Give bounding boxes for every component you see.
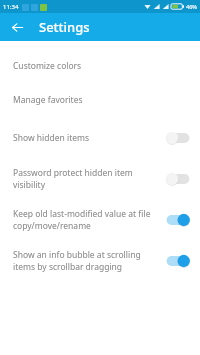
staticText: Customize colors	[13, 60, 82, 72]
button[interactable]: Keep old last-modified value at file cop…	[0, 199, 200, 240]
staticText: Keep old last-modified value at file cop…	[13, 208, 159, 232]
button[interactable]: Back	[6, 16, 28, 38]
staticText: Password protect hidden item visibility	[13, 167, 159, 191]
staticText: Settings	[39, 18, 90, 36]
button[interactable]: Manage favorites	[0, 83, 200, 117]
staticText: Show hidden items	[13, 132, 90, 144]
staticText: 11:34	[3, 3, 19, 11]
button[interactable]: Show an info bubble at scrolling items b…	[0, 240, 200, 281]
staticText: Manage favorites	[13, 94, 83, 106]
staticText: Show an info bubble at scrolling items b…	[13, 249, 159, 273]
button[interactable]: Password protect hidden item visibility	[0, 158, 200, 199]
button[interactable]: Show hidden items	[0, 117, 200, 158]
staticText: 46%	[186, 3, 197, 10]
button[interactable]: Customize colors	[0, 49, 200, 83]
